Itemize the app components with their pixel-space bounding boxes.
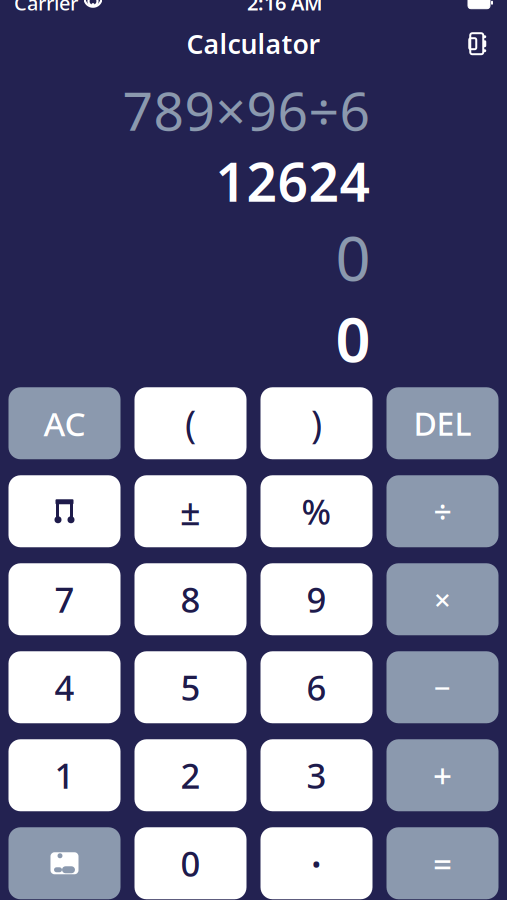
staticText: 8 [180, 576, 200, 622]
button[interactable]: 7 [8, 563, 120, 635]
button[interactable]: ) [260, 387, 372, 459]
button[interactable]: · [260, 827, 372, 899]
staticText: + [433, 753, 452, 797]
staticText: × [434, 580, 451, 619]
staticText: 12624 [215, 146, 370, 216]
button[interactable]: % [260, 475, 372, 547]
button[interactable]: Photo [8, 827, 120, 899]
button[interactable]: ± [134, 475, 246, 547]
staticText: AC [43, 401, 85, 445]
staticText: ) [311, 398, 322, 448]
staticText: 6 [306, 664, 326, 710]
staticText: 2 [180, 752, 200, 798]
button[interactable]: AC [8, 387, 120, 459]
staticText: ( [185, 398, 196, 448]
staticText: 1 [54, 752, 74, 798]
button[interactable]: 9 [260, 563, 372, 635]
staticText: 2:16 AM [247, 0, 323, 16]
staticText: 789×96÷6 [122, 75, 370, 145]
staticText: 3 [306, 752, 326, 798]
staticText: Carrier [14, 0, 78, 16]
button[interactable]: ( [134, 387, 246, 459]
button[interactable]: 3 [260, 739, 372, 811]
staticText: Calculator [186, 26, 320, 61]
button[interactable]: ÷ [386, 475, 498, 547]
staticText: − [434, 668, 451, 707]
staticText: 9 [306, 576, 326, 622]
staticText: % [301, 488, 331, 534]
button[interactable]: 4 [8, 651, 120, 723]
staticText: 7 [54, 576, 74, 622]
button[interactable]: = [386, 827, 498, 899]
button[interactable]: 6 [260, 651, 372, 723]
button[interactable]: 8 [134, 563, 246, 635]
button[interactable]: Sound [8, 475, 120, 547]
staticText: ÷ [433, 490, 451, 532]
staticText: = [433, 841, 452, 885]
button[interactable]: 0 [134, 827, 246, 899]
staticText: · [310, 835, 322, 892]
staticText: 0 [180, 840, 200, 886]
staticText: 0 [335, 298, 370, 379]
button[interactable]: 2 [134, 739, 246, 811]
button[interactable]: × [386, 563, 498, 635]
button[interactable]: 5 [134, 651, 246, 723]
staticText: DEL [413, 402, 471, 444]
button[interactable]: − [386, 651, 498, 723]
staticText: 4 [54, 664, 74, 710]
staticText: 0 [335, 216, 370, 298]
staticText: 5 [180, 664, 200, 710]
button[interactable]: 1 [8, 739, 120, 811]
staticText: ± [180, 487, 201, 535]
button[interactable]: + [386, 739, 498, 811]
button[interactable]: Sound [453, 22, 499, 66]
button[interactable]: DEL [386, 387, 498, 459]
